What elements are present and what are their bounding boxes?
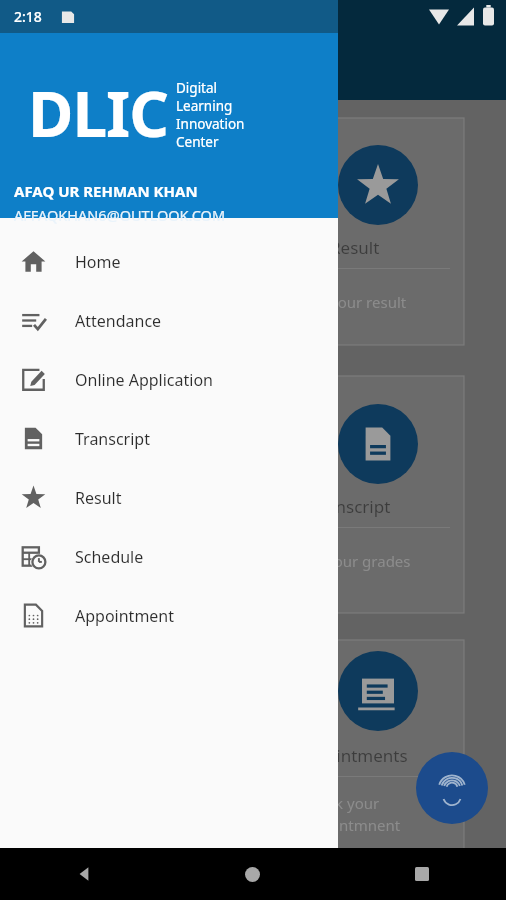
staticText: Result — [330, 236, 380, 259]
button[interactable]: Result — [0, 468, 338, 527]
button[interactable]: Schedule — [0, 527, 338, 586]
staticText: Home — [75, 251, 121, 273]
staticText: your grades — [326, 551, 411, 571]
staticText: Attendance — [75, 310, 162, 332]
staticText: ok your — [326, 793, 380, 813]
staticText: AFAQ UR REHMAN KHAN — [14, 181, 198, 201]
staticText: Learning — [176, 97, 233, 115]
staticText: Digital — [176, 79, 218, 97]
button[interactable]: Transcript — [0, 409, 338, 468]
button[interactable]: Back — [0, 848, 168, 900]
staticText: anscript — [326, 495, 391, 518]
button[interactable] — [285, 118, 464, 345]
staticText: Innovation — [176, 115, 245, 133]
staticText: ointmnent — [326, 815, 401, 835]
staticText: Transcript — [75, 428, 150, 450]
button[interactable] — [285, 640, 464, 860]
staticText: your result — [330, 292, 407, 312]
button[interactable]: Online Application — [0, 350, 338, 409]
button[interactable]: Fingerprint login — [416, 752, 488, 824]
staticText: Online Application — [75, 369, 214, 391]
button[interactable]: Recent apps — [337, 848, 506, 900]
button[interactable]: Attendance — [0, 291, 338, 350]
button[interactable] — [285, 376, 464, 613]
staticText: DLIC — [28, 71, 168, 155]
button[interactable]: Home — [168, 848, 337, 900]
staticText: Result — [75, 487, 122, 509]
staticText: ointments — [326, 744, 408, 767]
button[interactable]: Home — [0, 232, 338, 291]
button[interactable]: Appointment — [0, 586, 338, 645]
staticText: Center — [176, 133, 219, 151]
button[interactable]: DLIC — [0, 33, 338, 218]
staticText: Schedule — [75, 546, 144, 568]
staticText: AFFAQKHAN6@OUTLOOK.COM — [14, 205, 226, 225]
staticText: 2:18 — [14, 7, 42, 26]
staticText: Appointment — [75, 605, 175, 627]
